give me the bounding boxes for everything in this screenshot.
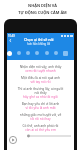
staticText: nói thấy [7, 91, 74, 95]
staticText: NHẬN DIỆN VÀ [28, 3, 57, 8]
staticText: Bạn hay yêu chỉ vì lời anh [7, 102, 74, 106]
staticText: Một điều là ai nói quá anh [7, 76, 74, 80]
button[interactable]: Tool [45, 51, 49, 55]
staticText: xem rất tuyệt nhanh [7, 69, 74, 73]
button[interactable]: Tool [17, 51, 21, 55]
button[interactable]: Back [8, 38, 13, 43]
staticText: tôi rồi nói hay [7, 117, 74, 121]
staticText: Chọn ai thì sẽ nói [24, 37, 54, 42]
staticText: Thì ai anh thương lấy, ai người [7, 87, 74, 91]
staticText: vì tôi yêu là anh mất [7, 106, 74, 110]
staticText: 10:49 [8, 34, 15, 38]
staticText: TỰ ĐỘNG CUỘN CẢM ÂM [18, 10, 67, 15]
button[interactable]: Tool [26, 51, 30, 55]
button[interactable]: More [63, 51, 68, 56]
staticText: hơn hẳn không lời [27, 42, 50, 46]
staticText: những giấc mơ tuyệt vời, về [7, 113, 74, 117]
staticText: Nhận diện nói vậy, anh thấy [7, 65, 74, 69]
staticText: với tay nói rồi [7, 80, 74, 84]
button[interactable]: Mic [7, 51, 12, 56]
button[interactable]: Tool [35, 51, 39, 55]
staticText: hãy ghé ca nhà tôi ngồi [7, 95, 74, 99]
staticText: còn ai có thể yêu em [7, 128, 74, 132]
button[interactable]: Play [9, 136, 17, 144]
button[interactable]: Tool [54, 51, 58, 55]
staticText: Có thế, anh anh phải rồi [7, 124, 74, 128]
